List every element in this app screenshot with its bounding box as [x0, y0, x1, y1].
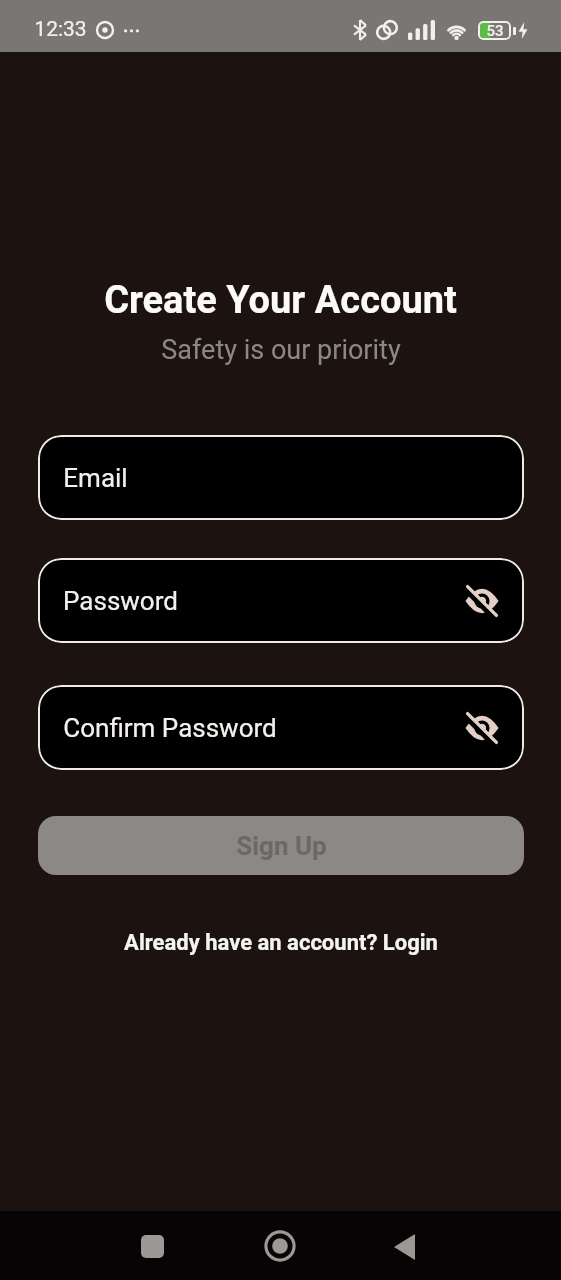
staticText: Create Your Account: [104, 278, 457, 323]
staticText: 12:33: [34, 17, 87, 42]
button[interactable]: Sign Up: [38, 816, 524, 875]
button[interactable]: [141, 1235, 164, 1258]
button[interactable]: Password: [38, 558, 524, 643]
button[interactable]: [464, 710, 500, 746]
button[interactable]: [264, 1230, 296, 1262]
button[interactable]: Confirm Password: [38, 685, 524, 770]
staticText: Already have an account? Login: [124, 930, 438, 956]
staticText: Safety is our priority: [161, 334, 401, 366]
staticText: 53: [486, 22, 504, 40]
staticText: Sign Up: [236, 831, 327, 861]
button[interactable]: Email: [38, 435, 524, 520]
staticText: Email: [63, 463, 128, 493]
button[interactable]: [391, 1234, 417, 1260]
button[interactable]: [464, 583, 500, 619]
staticText: Password: [63, 586, 178, 616]
staticText: Confirm Password: [63, 713, 277, 743]
button[interactable]: Already have an account? Login: [124, 930, 438, 956]
